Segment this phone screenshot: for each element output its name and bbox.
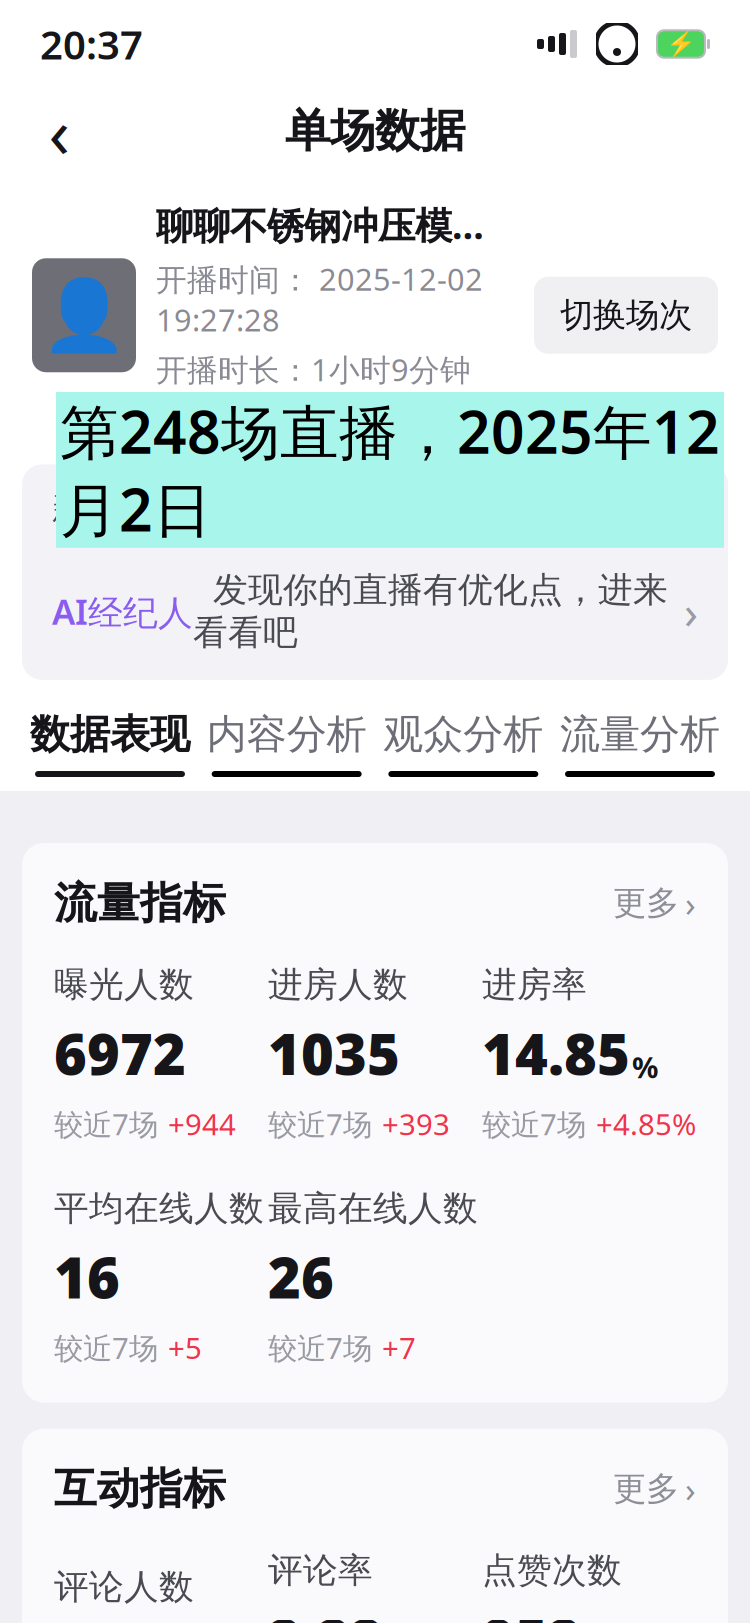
staticText: 20:37	[40, 17, 143, 70]
staticText: 6972	[54, 1016, 186, 1090]
button[interactable]: 流量分析	[560, 702, 720, 785]
button[interactable]: 数据表现	[30, 702, 190, 785]
staticText: +7	[382, 1328, 416, 1367]
staticText: +4.85%	[596, 1104, 696, 1143]
staticText: 较近7场	[54, 1328, 158, 1367]
staticText: ›	[685, 1466, 696, 1512]
staticText: 点赞次数	[482, 1549, 622, 1592]
staticText: 第248场直播，2025年12月2日	[60, 392, 720, 548]
staticText: 较近7场	[268, 1104, 372, 1143]
staticText: 14.85	[482, 1016, 630, 1090]
staticText: 评论率	[268, 1549, 373, 1592]
staticText: %	[632, 1047, 658, 1086]
staticText: ⚡	[666, 30, 696, 58]
button[interactable]: 内容分析	[207, 702, 367, 785]
staticText: 发现你的直播有优化点，进来看看吧	[193, 569, 668, 654]
staticText: 曝光人数	[54, 963, 194, 1006]
button[interactable]: 观众分析	[383, 702, 543, 785]
staticText: ‹	[48, 85, 69, 177]
staticText: 最高在线人数	[268, 1187, 478, 1230]
button[interactable]: Back	[24, 96, 94, 166]
button[interactable]: 更多	[613, 1466, 696, 1512]
staticText: 流量分析	[560, 710, 720, 759]
staticText: 较近7场	[482, 1104, 586, 1143]
staticText: AI经纪人	[52, 588, 193, 634]
staticText: 16	[54, 1240, 120, 1314]
staticText: 2.22	[268, 1602, 383, 1623]
staticText: 较近7场	[54, 1104, 158, 1143]
staticText: 互动指标	[54, 1463, 226, 1515]
staticText: +5	[168, 1328, 202, 1367]
staticText: 新增粉丝超过了	[52, 488, 293, 529]
staticText: ›	[685, 880, 696, 926]
button[interactable]: AI经纪人	[22, 569, 728, 680]
staticText: 开播时间： 2025-12-02 19:27:28	[156, 259, 483, 340]
staticText: 评论人数	[54, 1566, 194, 1608]
staticText: 较近7场	[268, 1328, 372, 1367]
button[interactable]: 更多	[613, 880, 696, 926]
button[interactable]: 切换场次	[534, 277, 718, 354]
staticText: 进房人数	[268, 963, 408, 1006]
staticText: 👤	[41, 276, 127, 355]
staticText: 更多	[613, 883, 679, 924]
staticText: 观众分析	[383, 710, 543, 759]
staticText: 开播时长：1小时9分钟18秒	[156, 349, 471, 430]
staticText: 数据表现	[30, 710, 190, 759]
staticText: 流量指标	[54, 877, 226, 929]
staticText: 单场数据	[285, 103, 465, 159]
staticText: 平均在线人数	[54, 1187, 264, 1230]
staticText: +393	[382, 1104, 450, 1143]
staticText: +944	[168, 1104, 236, 1143]
staticText: 进房率	[482, 963, 587, 1006]
staticText: 952	[482, 1602, 581, 1623]
staticText: 聊聊不锈钢冲压模…	[156, 200, 484, 250]
staticText: 内容分析	[207, 710, 367, 759]
staticText: 26	[268, 1240, 334, 1314]
staticText: 更多	[613, 1468, 679, 1509]
staticText: 1035	[268, 1016, 400, 1090]
staticText: ›	[684, 581, 698, 641]
staticText: 切换场次	[560, 295, 692, 336]
